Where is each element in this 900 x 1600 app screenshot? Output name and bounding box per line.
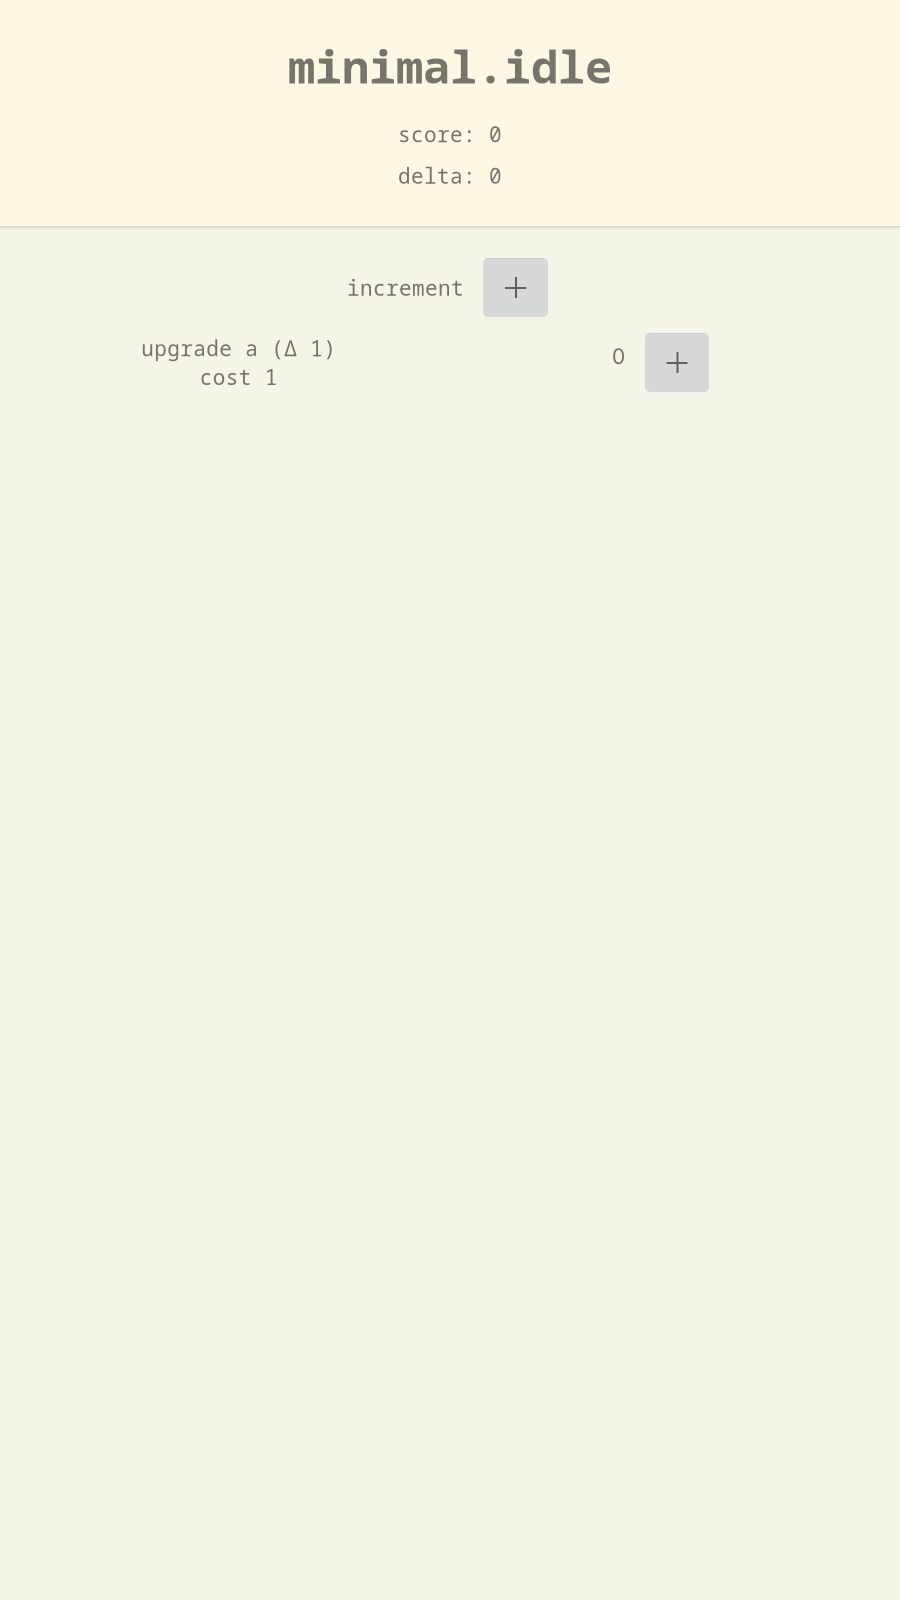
staticText: upgrade a (Δ 1) cost 1: [141, 334, 336, 391]
staticText: minimal.idle: [288, 35, 612, 97]
staticText: score: 0: [398, 120, 502, 148]
staticText: delta: 0: [398, 161, 502, 190]
button[interactable]: Increment: [483, 258, 548, 317]
staticText: increment: [347, 273, 464, 302]
button[interactable]: Buy upgrade a: [645, 333, 709, 392]
staticText: 0: [612, 344, 625, 369]
